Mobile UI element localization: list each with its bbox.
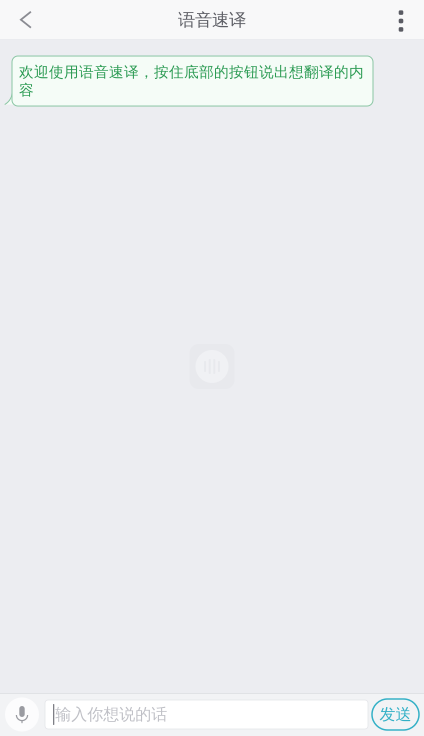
staticText: 欢迎使用语音速译，按住底部的按钮说出想翻译的内容	[19, 63, 364, 99]
staticText: 语音速译	[178, 9, 246, 31]
staticText: 发送	[379, 705, 411, 724]
button[interactable]: 输入你想说的话	[45, 700, 368, 729]
button[interactable]: Back	[0, 0, 48, 40]
button[interactable]: More options	[379, 0, 424, 40]
staticText: 输入你想说的话	[55, 705, 167, 724]
button[interactable]: 发送	[372, 699, 419, 730]
button[interactable]: Voice input	[5, 697, 39, 731]
